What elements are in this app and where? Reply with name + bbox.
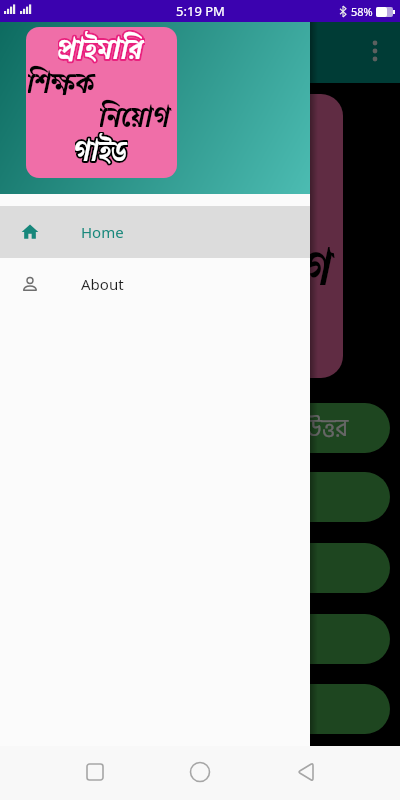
button[interactable]: Home <box>0 206 310 258</box>
button[interactable] <box>12 684 390 734</box>
staticText: About <box>81 274 124 294</box>
staticText: গাইড <box>75 132 128 168</box>
staticText: 5:19 PM <box>176 2 225 20</box>
staticText: প্রাইমারি <box>58 30 145 66</box>
staticText: গাইড <box>75 132 128 168</box>
staticText: নিয়োগ <box>100 98 172 134</box>
button[interactable]: About <box>0 258 310 310</box>
staticText: প্রাইমারি <box>126 103 275 165</box>
button[interactable] <box>12 543 390 593</box>
staticText: 58% <box>351 4 373 19</box>
staticText: Home <box>81 222 124 242</box>
button[interactable] <box>12 614 390 664</box>
staticText: শিক্ষক <box>65 169 181 231</box>
staticText: প্রশ্ন উত্তর <box>12 409 348 448</box>
button[interactable] <box>12 472 390 522</box>
staticText: শিক্ষক <box>28 64 96 100</box>
staticText: প্রাইমারি <box>58 30 145 66</box>
staticText: নিয়োগ <box>212 235 335 297</box>
staticText: প্রাইমারি <box>126 103 275 165</box>
button[interactable]: প্রশ্ন উত্তর <box>12 403 390 453</box>
